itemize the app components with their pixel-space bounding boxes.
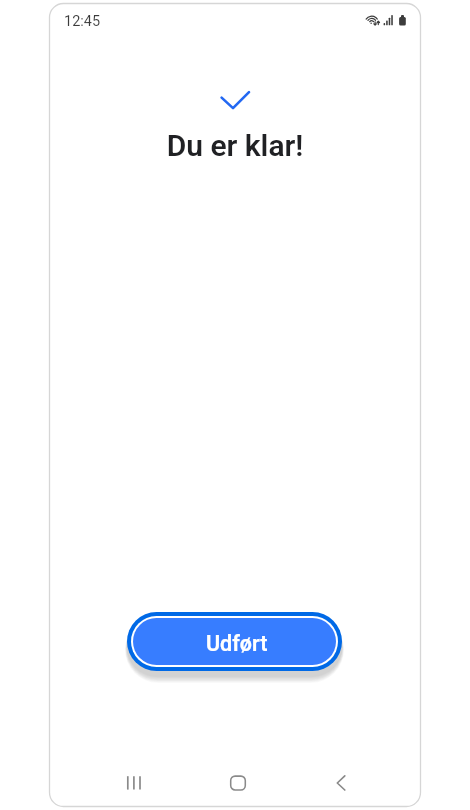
button[interactable]: Udført [133, 618, 336, 665]
staticText: 12:45 [64, 13, 101, 30]
button[interactable]: Back [288, 764, 389, 802]
staticText: Du er klar! [0, 128, 470, 163]
staticText: Udført [206, 631, 268, 656]
button[interactable]: Home [187, 764, 288, 802]
button[interactable]: Recent apps [85, 764, 187, 802]
